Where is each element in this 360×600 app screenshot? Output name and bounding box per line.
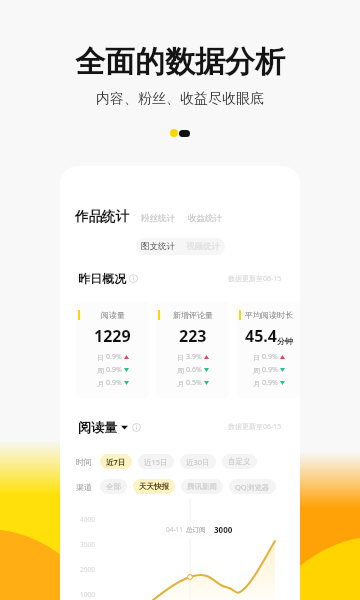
staticText: 视频统计 [186, 241, 220, 252]
staticText: 收益统计 [188, 213, 222, 224]
staticText: 总订阅 [186, 526, 206, 534]
staticText: 0.9% [106, 378, 122, 388]
staticText: 月 [97, 379, 104, 388]
staticText: 0.9% [262, 378, 278, 388]
button[interactable]: 图文统计 [136, 238, 180, 255]
staticText: 4000 [80, 515, 95, 524]
staticText: 分钟 [277, 336, 293, 346]
button[interactable]: 近7日 [100, 454, 132, 469]
button[interactable]: 平均阅读时长 [237, 302, 300, 398]
staticText: 0.9% [106, 352, 122, 362]
staticText: 0.6% [186, 365, 202, 375]
staticText: QQ浏览器 [235, 482, 270, 492]
staticText: 3000 [214, 524, 233, 535]
staticText: 近15日 [144, 457, 168, 467]
staticText: 作品统计 [75, 208, 129, 225]
staticText: 数据更新至06-15 [228, 422, 282, 432]
button[interactable]: 腾讯新闻 [181, 479, 223, 494]
staticText: 04-11 [166, 525, 183, 534]
staticText: 0.5% [186, 378, 202, 388]
staticText: 周 [97, 366, 104, 375]
staticText: 自定义 [228, 457, 251, 466]
staticText: 全面的数据分析 [75, 43, 285, 81]
staticText: 3.9% [186, 352, 202, 362]
staticText: 223 [179, 325, 207, 347]
staticText: 新增评论量 [173, 310, 213, 320]
button[interactable]: 视频统计 [180, 238, 225, 255]
staticText: 全部 [106, 482, 121, 491]
button[interactable]: QQ浏览器 [229, 479, 276, 494]
staticText: 月 [253, 379, 260, 388]
button[interactable]: 近30日 [180, 454, 216, 469]
staticText: 周 [177, 366, 184, 375]
staticText: 日 [177, 353, 184, 362]
staticText: 天天快报 [139, 482, 169, 491]
staticText: 腾讯新闻 [187, 482, 217, 491]
staticText: 日 [253, 353, 260, 362]
staticText: 日 [97, 353, 104, 362]
staticText: 周 [253, 366, 260, 375]
staticText: 图文统计 [141, 241, 175, 252]
staticText: 月 [177, 379, 184, 388]
button[interactable]: 自定义 [222, 454, 257, 469]
staticText: 近7日 [106, 457, 126, 467]
button[interactable]: 全部 [100, 479, 127, 494]
staticText: 粉丝统计 [141, 213, 175, 224]
staticText: 0.9% [106, 365, 122, 375]
button[interactable]: 04-11 [158, 520, 241, 538]
staticText: 阅读量 [101, 310, 125, 320]
staticText: 昨日概况 [78, 271, 126, 286]
staticText: 数据更新至06-15 [228, 274, 282, 284]
staticText: 0.9% [262, 365, 278, 375]
button[interactable]: 新增评论量 [156, 302, 229, 398]
staticText: 2000 [80, 565, 95, 574]
staticText: 3000 [80, 540, 95, 549]
button[interactable]: 阅读量 [76, 302, 149, 398]
staticText: 平均阅读时长 [245, 310, 293, 320]
staticText: 45.4 [245, 325, 277, 347]
staticText: 近30日 [186, 457, 210, 467]
staticText: 阅读量 [78, 419, 117, 435]
staticText: 1000 [80, 590, 95, 599]
staticText: 内容、粉丝、收益尽收眼底 [96, 90, 264, 108]
staticText: 0.9% [262, 352, 278, 362]
button[interactable]: 天天快报 [133, 479, 175, 494]
staticText: 时间 [76, 457, 92, 467]
button[interactable]: 近15日 [138, 454, 174, 469]
staticText: 渠道 [76, 482, 92, 492]
staticText: 1229 [94, 325, 131, 347]
